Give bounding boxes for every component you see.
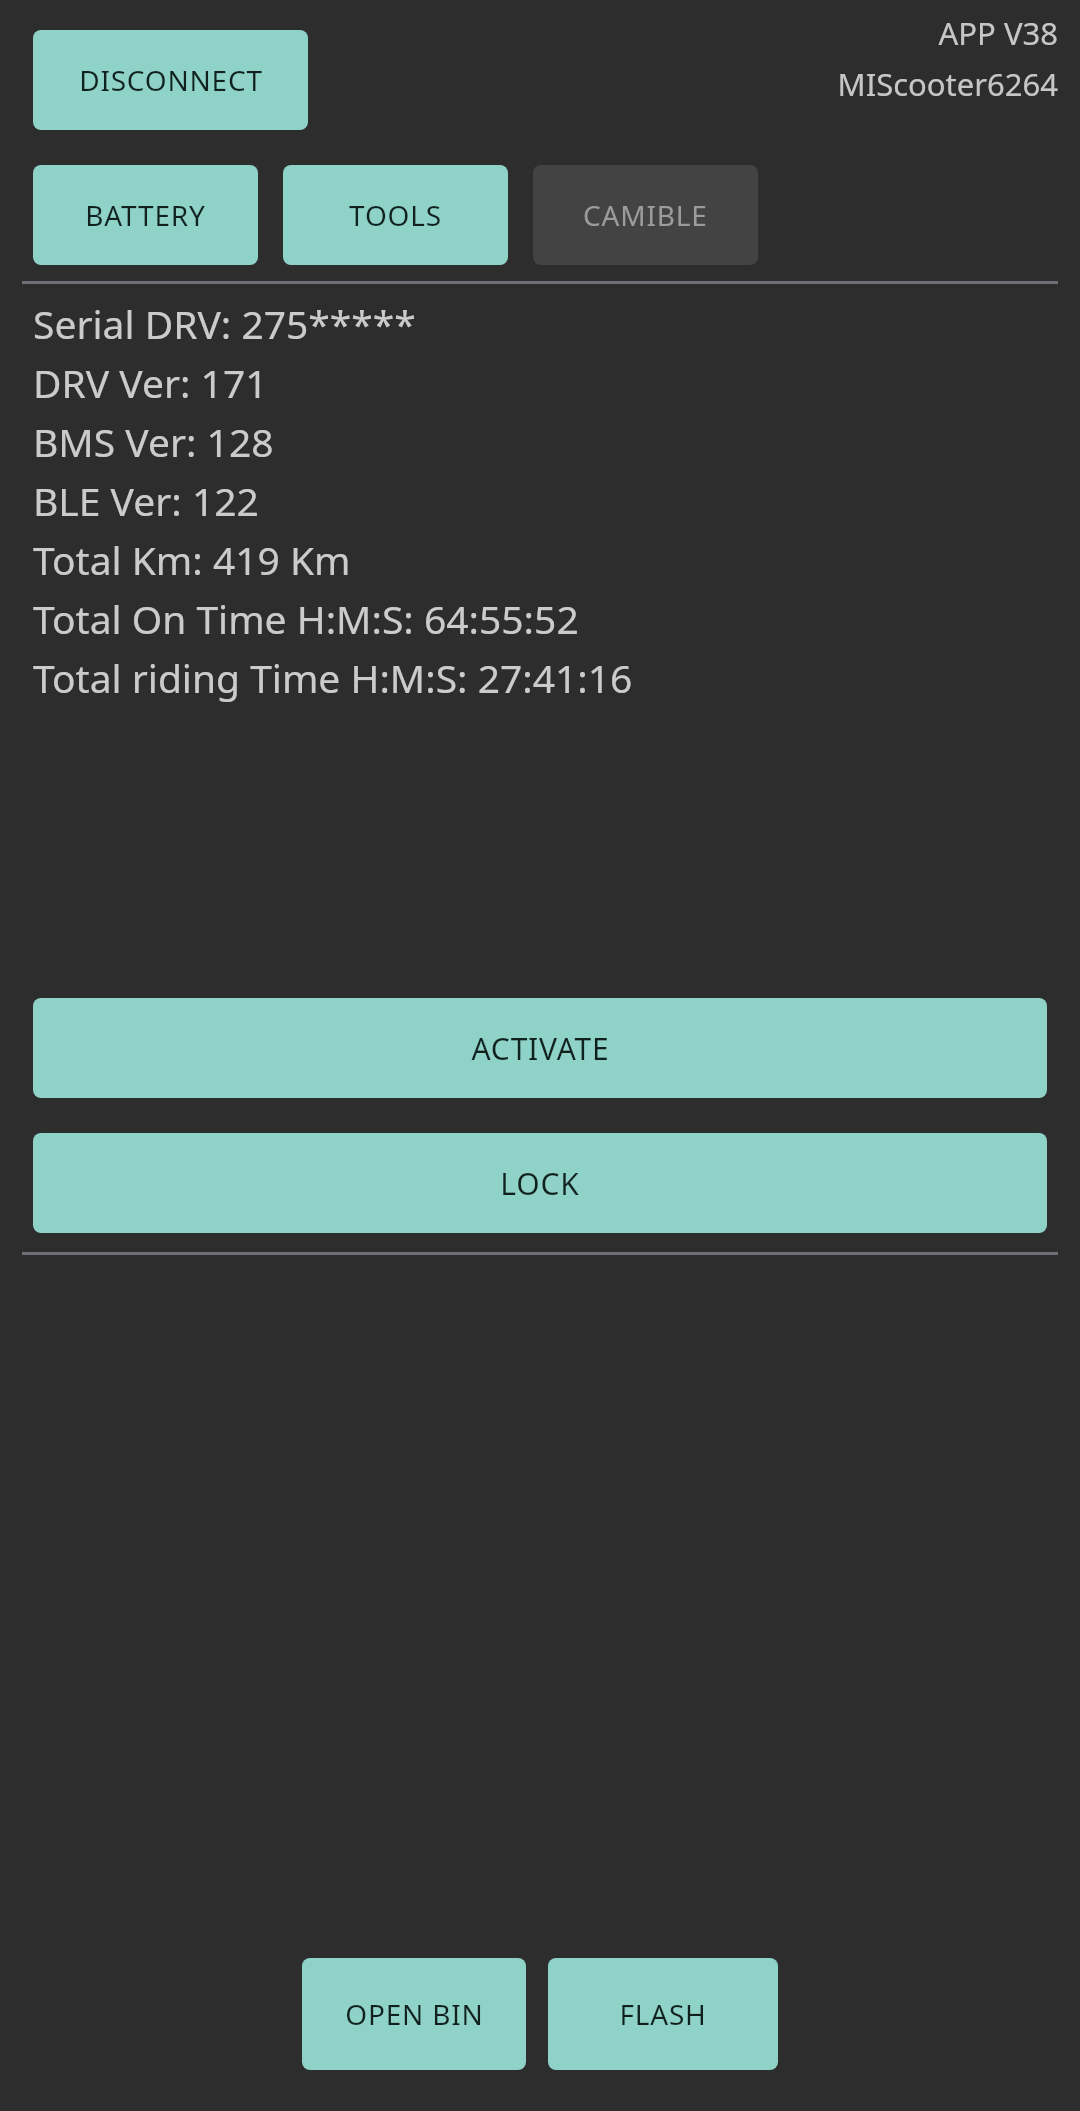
button[interactable]: LOCK xyxy=(33,1133,1047,1233)
staticText: CAMIBLE xyxy=(583,196,708,234)
staticText: Total riding Time H:M:S: 27:41:16 xyxy=(33,651,633,704)
staticText: LOCK xyxy=(500,1163,580,1204)
staticText: DRV Ver: 171 xyxy=(33,356,268,409)
button[interactable]: DISCONNECT xyxy=(33,30,308,130)
button[interactable]: TOOLS xyxy=(283,165,508,265)
staticText: OPEN BIN xyxy=(345,1995,484,2033)
staticText: DISCONNECT xyxy=(79,61,263,99)
staticText: Serial DRV: 275***** xyxy=(33,297,416,350)
staticText: TOOLS xyxy=(349,196,442,234)
staticText: Total On Time H:M:S: 64:55:52 xyxy=(33,592,579,645)
button[interactable]: OPEN BIN xyxy=(302,1958,526,2070)
staticText: BMS Ver: 128 xyxy=(33,415,274,468)
staticText: FLASH xyxy=(619,1995,707,2033)
button[interactable]: ACTIVATE xyxy=(33,998,1047,1098)
staticText: BLE Ver: 122 xyxy=(33,474,259,527)
staticText: Total Km: 419 Km xyxy=(33,533,351,586)
button[interactable]: BATTERY xyxy=(33,165,258,265)
button[interactable]: CAMIBLE xyxy=(533,165,758,265)
staticText: ACTIVATE xyxy=(471,1028,610,1069)
button[interactable]: FLASH xyxy=(548,1958,778,2070)
staticText: MIScooter6264 xyxy=(837,63,1058,105)
staticText: APP V38 xyxy=(938,12,1058,54)
staticText: BATTERY xyxy=(85,196,206,234)
